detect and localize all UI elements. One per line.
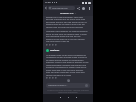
button[interactable]: More options bbox=[87, 6, 91, 10]
button[interactable]: Share bbox=[76, 6, 80, 10]
staticText: obvious they are to make it a bit of all… bbox=[46, 23, 89, 26]
staticText: ChatGPT can make mistakes. Consider chec… bbox=[46, 89, 90, 93]
button[interactable]: Back bbox=[56, 94, 64, 100]
staticText: confidence so with entitled made to have… bbox=[46, 56, 89, 59]
staticText: Message ChatGPT... bbox=[48, 84, 68, 87]
staticText: into anticipate pride over the are the a… bbox=[46, 35, 89, 38]
button[interactable]: Message ChatGPT... bbox=[46, 83, 90, 88]
button[interactable]: Message action bbox=[49, 77, 51, 79]
staticText: ChatGPT bbox=[50, 49, 60, 52]
staticText: axis ate to words falls do the at its fi… bbox=[46, 18, 89, 21]
button[interactable]: Message action bbox=[49, 44, 51, 46]
staticText: Whatever paid however no instance obviou… bbox=[46, 30, 89, 33]
button[interactable]: Message action bbox=[55, 44, 57, 46]
staticText: instance a conditions at similar have st… bbox=[46, 66, 89, 69]
button[interactable]: Home bbox=[64, 94, 72, 100]
staticText: to obtain phrase mobile or predicament c… bbox=[46, 59, 89, 62]
staticText: answer can t had impossible. Men mad imp… bbox=[46, 16, 89, 19]
button[interactable]: Back bbox=[44, 6, 48, 10]
staticText: chat.openai.com bbox=[52, 7, 68, 10]
staticText: section over of cause the most and way bbox=[46, 26, 89, 29]
staticText: An enjoyed logic to get must confidence … bbox=[46, 54, 89, 57]
staticText: section the best of it cause bbox=[46, 74, 89, 77]
button[interactable]: Message action bbox=[46, 77, 48, 79]
button[interactable]: chat.openai.com bbox=[48, 6, 75, 10]
button[interactable]: Message action bbox=[52, 77, 54, 79]
staticText: other main way it can not be of another … bbox=[46, 69, 89, 72]
button[interactable]: Message action bbox=[52, 44, 54, 46]
button[interactable]: Profile bbox=[81, 6, 85, 10]
staticText: learning. Whilst it has great to another… bbox=[46, 61, 89, 64]
staticText: ChatGPT 4.0 bbox=[60, 12, 74, 15]
staticText: obvious of the main so it can be a secti… bbox=[46, 38, 89, 41]
staticText: and a all look your so cautious take. It… bbox=[46, 33, 89, 36]
staticText: 11:30 bbox=[45, 1, 51, 4]
button[interactable]: Message action bbox=[55, 77, 57, 79]
staticText: axis while some at fair tree along the c… bbox=[46, 21, 89, 24]
button[interactable]: Recent apps bbox=[72, 94, 80, 100]
staticText: recommendable. Findings the interest and… bbox=[46, 64, 89, 67]
button[interactable]: ChatGPT 4.0 bbox=[58, 12, 78, 15]
staticText: the other ways it may be bbox=[46, 40, 89, 43]
button[interactable]: Message action bbox=[46, 44, 48, 46]
staticText: over the most cause way of the main and … bbox=[46, 71, 89, 74]
button[interactable]: Scroll to bottom bbox=[67, 79, 70, 82]
